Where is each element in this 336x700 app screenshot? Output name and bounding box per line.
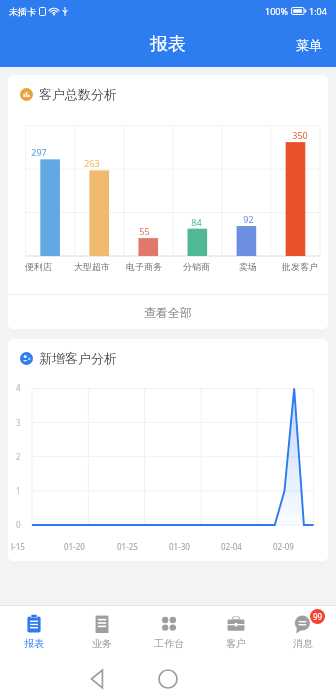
staticText: 报表 <box>24 637 44 650</box>
staticText: 未插卡 <box>9 6 36 17</box>
staticText: 便利店 <box>25 261 52 272</box>
staticText: 客户总数分析 <box>39 86 117 102</box>
button[interactable]: 工作台 <box>135 606 202 658</box>
staticText: 3 <box>16 417 21 428</box>
staticText: 350 <box>292 129 308 141</box>
staticText: 02-04 <box>221 541 242 552</box>
staticText: 卖场 <box>239 261 257 272</box>
staticText: 4 <box>16 382 21 393</box>
staticText: 01-30 <box>169 541 190 552</box>
staticText: 01-20 <box>64 541 85 552</box>
staticText: 1 <box>16 485 21 496</box>
staticText: 电子商务 <box>126 261 162 272</box>
button[interactable]: 业务 <box>68 606 135 658</box>
staticText: 55 <box>139 225 150 237</box>
other: 消息 <box>293 614 313 634</box>
staticText: 01-25 <box>117 541 138 552</box>
staticText: 分销商 <box>183 261 210 272</box>
button[interactable]: 菜单 <box>282 22 336 67</box>
other: System navigation <box>0 658 336 700</box>
button[interactable]: 查看全部 <box>8 295 328 329</box>
staticText: 工作台 <box>154 637 184 650</box>
staticText: 客户 <box>226 637 246 650</box>
staticText: 84 <box>191 216 202 228</box>
other: 报表 <box>24 614 44 634</box>
staticText: 新增客户分析 <box>39 350 117 366</box>
button[interactable]: 报表 <box>0 606 68 658</box>
other: 客户 <box>226 614 246 634</box>
staticText: 业务 <box>92 637 112 650</box>
staticText: 批发客户 <box>282 261 318 272</box>
staticText: 92 <box>243 213 254 225</box>
staticText: 02-09 <box>273 541 294 552</box>
staticText: 查看全部 <box>144 305 192 320</box>
staticText: 100% <box>265 5 288 17</box>
staticText: 1:04 <box>309 5 327 17</box>
staticText: 297 <box>31 146 47 158</box>
staticText: 2 <box>16 451 21 462</box>
other: 业务 <box>92 614 112 634</box>
staticText: 报表 <box>150 33 186 56</box>
button[interactable]: 客户 <box>202 606 269 658</box>
staticText: 消息 <box>293 637 313 650</box>
staticText: 99 <box>313 611 323 622</box>
staticText: 大型超市 <box>74 261 110 272</box>
staticText: 0 <box>16 519 21 530</box>
other: 工作台 <box>159 614 179 634</box>
button[interactable]: 消息 <box>269 606 336 658</box>
staticText: 菜单 <box>296 37 322 53</box>
staticText: l-15 <box>11 541 25 552</box>
staticText: 263 <box>84 157 100 169</box>
